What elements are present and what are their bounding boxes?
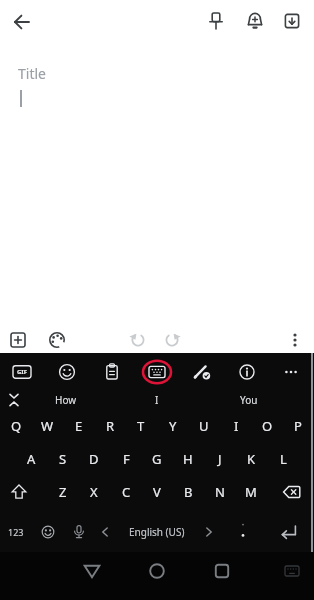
button[interactable]: I bbox=[221, 410, 251, 442]
staticText: V bbox=[153, 483, 161, 501]
staticText: Q bbox=[11, 417, 22, 435]
button[interactable]: X bbox=[79, 476, 109, 508]
button[interactable]: K bbox=[236, 443, 266, 475]
button[interactable] bbox=[200, 550, 244, 592]
button[interactable] bbox=[38, 321, 76, 359]
button[interactable]: E bbox=[64, 410, 94, 442]
staticText: J bbox=[218, 450, 222, 468]
button[interactable]: S bbox=[48, 443, 78, 475]
button[interactable] bbox=[237, 1, 273, 41]
button[interactable]: A bbox=[16, 443, 46, 475]
staticText: English (US) bbox=[129, 525, 185, 539]
button[interactable]: You bbox=[214, 388, 284, 412]
button[interactable] bbox=[70, 550, 114, 592]
button[interactable] bbox=[228, 516, 258, 548]
staticText: You bbox=[240, 393, 258, 407]
button[interactable]: B bbox=[173, 476, 203, 508]
staticText: 123 bbox=[8, 526, 24, 538]
button[interactable]: Q bbox=[1, 410, 31, 442]
button[interactable]: U bbox=[189, 410, 219, 442]
button[interactable] bbox=[275, 550, 309, 592]
button[interactable]: 123 bbox=[1, 516, 31, 548]
staticText: W bbox=[41, 417, 54, 435]
staticText: GIF bbox=[17, 368, 27, 376]
staticText: Title bbox=[18, 64, 46, 83]
button[interactable] bbox=[198, 1, 234, 41]
button[interactable]: H bbox=[173, 443, 203, 475]
staticText: How bbox=[55, 393, 77, 407]
button[interactable]: M bbox=[236, 476, 266, 508]
staticText: Z bbox=[59, 483, 67, 501]
staticText: F bbox=[123, 450, 130, 468]
button[interactable] bbox=[95, 356, 129, 388]
button[interactable]: L bbox=[268, 443, 298, 475]
staticText: E bbox=[75, 417, 83, 435]
staticText: L bbox=[280, 450, 287, 468]
button[interactable] bbox=[271, 516, 307, 548]
button[interactable]: D bbox=[79, 443, 109, 475]
button[interactable] bbox=[230, 356, 264, 388]
button[interactable] bbox=[274, 1, 310, 41]
button[interactable] bbox=[66, 516, 92, 548]
button[interactable] bbox=[139, 356, 175, 388]
staticText: I bbox=[155, 393, 159, 407]
staticText: K bbox=[247, 450, 256, 468]
button[interactable]: R bbox=[95, 410, 125, 442]
button[interactable] bbox=[154, 321, 190, 359]
button[interactable] bbox=[135, 550, 179, 592]
button[interactable] bbox=[1, 388, 27, 412]
staticText: P bbox=[294, 417, 302, 435]
staticText: R bbox=[106, 417, 115, 435]
button[interactable]: G bbox=[142, 443, 172, 475]
staticText: D bbox=[89, 450, 99, 468]
staticText: I bbox=[234, 417, 239, 435]
staticText: G bbox=[152, 450, 162, 468]
staticText: C bbox=[122, 483, 131, 501]
button[interactable] bbox=[2, 2, 42, 42]
button[interactable]: F bbox=[111, 443, 141, 475]
button[interactable]: N bbox=[205, 476, 235, 508]
button[interactable]: GIF bbox=[5, 356, 39, 388]
button[interactable] bbox=[50, 356, 84, 388]
button[interactable]: How bbox=[31, 388, 101, 412]
button[interactable]: O bbox=[252, 410, 282, 442]
button[interactable] bbox=[272, 476, 312, 508]
staticText: U bbox=[199, 417, 209, 435]
staticText: M bbox=[245, 483, 257, 501]
staticText: O bbox=[262, 417, 273, 435]
button[interactable]: Z bbox=[48, 476, 78, 508]
button[interactable] bbox=[120, 321, 156, 359]
button[interactable] bbox=[276, 356, 306, 388]
button[interactable]: J bbox=[205, 443, 235, 475]
staticText: N bbox=[215, 483, 225, 501]
button[interactable]: W bbox=[32, 410, 62, 442]
button[interactable]: V bbox=[142, 476, 172, 508]
button[interactable] bbox=[185, 356, 219, 388]
button[interactable] bbox=[0, 321, 36, 359]
staticText: Y bbox=[169, 417, 177, 435]
staticText: A bbox=[27, 450, 36, 468]
button[interactable] bbox=[33, 516, 63, 548]
button[interactable]: C bbox=[111, 476, 141, 508]
button[interactable] bbox=[1, 476, 37, 508]
button[interactable]: Title bbox=[18, 64, 138, 86]
button[interactable] bbox=[278, 321, 312, 359]
staticText: X bbox=[90, 483, 98, 501]
button[interactable]: T bbox=[126, 410, 156, 442]
button[interactable]: Y bbox=[158, 410, 188, 442]
button[interactable]: P bbox=[283, 410, 313, 442]
staticText: T bbox=[137, 417, 145, 435]
staticText: B bbox=[184, 483, 193, 501]
staticText: H bbox=[183, 450, 193, 468]
button[interactable]: I bbox=[122, 388, 192, 412]
staticText: S bbox=[59, 450, 67, 468]
button[interactable]: English (US) bbox=[97, 516, 217, 548]
